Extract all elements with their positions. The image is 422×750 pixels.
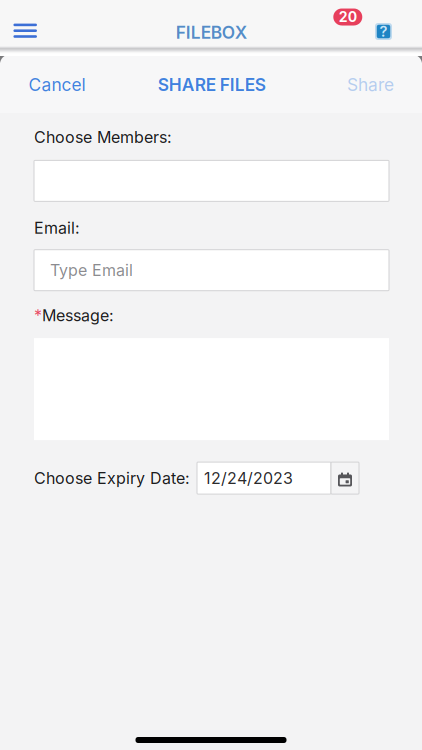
staticText: Choose Expiry Date: [34,468,190,488]
button[interactable]: Type Email [34,250,389,291]
staticText: Message: [42,306,114,325]
staticText: * [34,306,42,325]
staticText: Cancel [28,74,85,95]
button[interactable]: Notifications [366,14,400,48]
staticText: Choose Members: [34,127,172,147]
staticText: SHARE FILES [158,74,266,95]
button[interactable]: 12/24/2023 [197,462,331,494]
button[interactable]: Choose date [331,462,359,494]
staticText: Type Email [50,260,133,280]
staticText: 12/24/2023 [204,468,293,488]
button[interactable]: Cancel [14,61,99,109]
button[interactable]: Choose Members [34,160,389,201]
button[interactable]: Menu [1,9,49,53]
staticText: ? [379,23,387,40]
staticText: 20 [339,8,357,25]
staticText: Email: [34,218,80,238]
button[interactable]: Share [333,61,408,109]
staticText: Share [347,74,394,95]
staticText: FILEBOX [176,22,247,43]
